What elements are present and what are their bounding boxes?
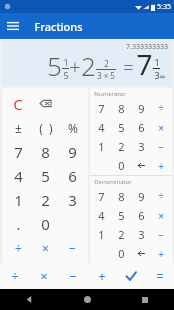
button[interactable]: Backspace xyxy=(32,91,59,116)
staticText: 5 xyxy=(41,166,50,186)
staticText: × xyxy=(42,240,49,256)
staticText: − xyxy=(69,240,76,256)
button[interactable]: − xyxy=(151,137,171,156)
button[interactable]: 9 xyxy=(131,186,151,206)
button[interactable]: 3 xyxy=(59,188,86,212)
button[interactable]: 3 xyxy=(131,225,151,244)
staticText: 7 xyxy=(14,142,23,162)
button[interactable]: ÷ xyxy=(151,186,171,206)
staticText: + xyxy=(69,53,81,80)
button[interactable]: 5 xyxy=(32,164,59,188)
button[interactable]: Back xyxy=(0,289,58,310)
staticText: 2 xyxy=(118,139,125,154)
button[interactable]: 8 xyxy=(111,98,131,118)
button[interactable]: 9 xyxy=(131,98,151,118)
button[interactable]: × xyxy=(29,263,58,289)
button[interactable]: ÷ xyxy=(151,98,171,118)
staticText: 9 xyxy=(138,101,145,116)
button[interactable]: 2 xyxy=(32,188,59,212)
staticText: 3 xyxy=(138,227,145,242)
button[interactable]: 7 xyxy=(91,98,111,118)
staticText: 5:35 xyxy=(157,2,171,12)
button[interactable]: 5 xyxy=(111,206,131,225)
button[interactable]: ± xyxy=(4,116,32,140)
staticText: . xyxy=(16,214,21,234)
staticText: 7.333333333 xyxy=(126,42,168,52)
button[interactable]: = xyxy=(145,263,174,289)
button[interactable]: + xyxy=(87,263,116,289)
button[interactable]: 5 xyxy=(111,118,131,137)
button[interactable]: ( ) xyxy=(32,116,59,140)
staticText: 6 xyxy=(138,120,145,135)
staticText: 8 xyxy=(118,189,125,204)
staticText: 1 xyxy=(98,227,105,242)
button[interactable]: 4 xyxy=(4,164,32,188)
button[interactable]: 8 xyxy=(32,140,59,164)
staticText: 8 xyxy=(118,101,125,116)
button[interactable]: 4 xyxy=(91,206,111,225)
staticText: 3 xyxy=(154,69,160,81)
staticText: × xyxy=(40,267,48,285)
button[interactable]: 1 xyxy=(91,137,111,156)
staticText: − xyxy=(69,267,77,285)
staticText: − xyxy=(158,228,164,242)
button[interactable]: 6 xyxy=(131,206,151,225)
staticText: 7 xyxy=(98,189,105,204)
staticText: 2 xyxy=(81,48,96,83)
button[interactable]: 0 xyxy=(32,212,59,236)
button[interactable]: 7.333333333 xyxy=(2,41,172,86)
button[interactable]: Home xyxy=(58,289,116,310)
button[interactable]: C xyxy=(4,91,32,116)
staticText: 5 xyxy=(118,208,125,223)
button[interactable]: 8 xyxy=(111,186,131,206)
staticText: × xyxy=(158,209,164,223)
button[interactable]: 7 xyxy=(4,140,32,164)
button[interactable]: × xyxy=(32,236,59,260)
staticText: 2 xyxy=(104,58,109,69)
button[interactable]: 4 xyxy=(91,118,111,137)
button[interactable]: Open navigation menu xyxy=(0,13,26,39)
button[interactable]: Backspace xyxy=(131,156,151,175)
button[interactable]: − xyxy=(59,236,86,260)
staticText: ÷ xyxy=(158,189,164,203)
staticText: = xyxy=(116,55,136,80)
button[interactable]: ÷ xyxy=(4,236,32,260)
staticText: ± xyxy=(15,120,22,136)
staticText: 3 xyxy=(68,190,77,210)
button[interactable]: ÷ xyxy=(0,263,29,289)
staticText: 4 xyxy=(14,166,23,186)
staticText: ÷ xyxy=(15,240,22,256)
staticText: 7 xyxy=(136,45,153,83)
button[interactable]: 6 xyxy=(59,164,86,188)
button[interactable]: . xyxy=(4,212,32,236)
button[interactable]: 0 xyxy=(111,244,131,263)
button[interactable]: 2 xyxy=(111,137,131,156)
button[interactable]: + xyxy=(151,244,171,263)
button[interactable]: 3 xyxy=(131,137,151,156)
staticText: 9 xyxy=(138,189,145,204)
button[interactable]: − xyxy=(151,225,171,244)
button[interactable] xyxy=(116,263,145,289)
staticText: 9 xyxy=(68,142,77,162)
staticText: 8 xyxy=(41,142,50,162)
staticText: 3 × 5 xyxy=(97,70,115,81)
button[interactable]: − xyxy=(58,263,87,289)
button[interactable]: % xyxy=(59,116,86,140)
button[interactable]: 6 xyxy=(131,118,151,137)
button[interactable]: + xyxy=(151,156,171,175)
staticText: − xyxy=(158,140,164,154)
button[interactable]: 1 xyxy=(91,225,111,244)
button[interactable]: 1 xyxy=(4,188,32,212)
button[interactable]: 0 xyxy=(111,156,131,175)
button[interactable]: Backspace xyxy=(131,244,151,263)
button[interactable]: 7 xyxy=(91,186,111,206)
staticText: ÷ xyxy=(11,267,19,285)
button[interactable]: × xyxy=(151,206,171,225)
staticText: 0 xyxy=(118,246,125,261)
staticText: 5 xyxy=(118,120,125,135)
staticText: 2 xyxy=(41,190,50,210)
button[interactable]: 9 xyxy=(59,140,86,164)
button[interactable]: 2 xyxy=(111,225,131,244)
button[interactable]: × xyxy=(151,118,171,137)
button[interactable]: Recent apps xyxy=(116,289,174,310)
